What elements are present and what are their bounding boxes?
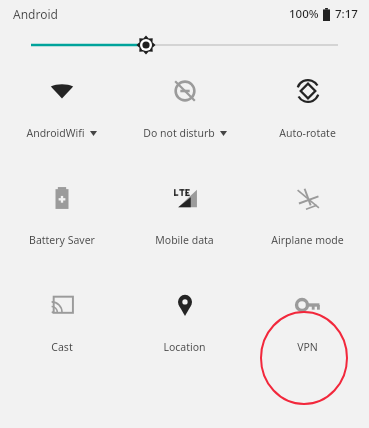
staticText: Mobile data [155, 233, 214, 247]
staticText: Auto-rotate [279, 126, 336, 140]
button[interactable]: VPN [246, 292, 369, 354]
staticText: 7:17 [335, 6, 358, 22]
button[interactable]: Battery Saver [0, 185, 123, 247]
button[interactable]: Airplane mode [246, 185, 369, 247]
staticText: Do not disturb [143, 126, 215, 140]
staticText: Airplane mode [271, 233, 344, 247]
button[interactable]: AndroidWifi [0, 78, 123, 140]
button[interactable]: Cast [0, 292, 123, 354]
button[interactable]: Mobile data [123, 185, 246, 247]
button[interactable]: Do not disturb [123, 78, 246, 140]
staticText: 100% [289, 6, 319, 22]
staticText: Cast [51, 340, 73, 354]
button[interactable]: Location [123, 292, 246, 354]
button[interactable]: Brightness [0, 28, 369, 62]
staticText: VPN [297, 340, 318, 354]
staticText: Battery Saver [29, 233, 95, 247]
button[interactable]: Auto-rotate [246, 78, 369, 140]
staticText: Location [163, 340, 206, 354]
staticText: Android [13, 6, 58, 22]
staticText: AndroidWifi [26, 126, 85, 140]
